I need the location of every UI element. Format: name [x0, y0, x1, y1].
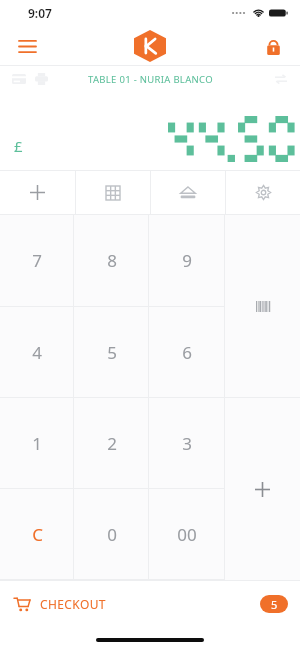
button[interactable]: Transfer	[270, 69, 292, 89]
button[interactable]: Scan barcode	[225, 215, 300, 397]
button[interactable]: Menu	[10, 29, 44, 63]
button[interactable]: 7	[0, 215, 74, 306]
staticText: 9:07	[28, 5, 52, 21]
button[interactable]: Card payment	[8, 69, 30, 89]
staticText: 4	[32, 341, 42, 364]
button[interactable]: 3	[149, 398, 224, 488]
button[interactable]: Home	[130, 26, 170, 66]
button[interactable]: 9	[149, 215, 224, 306]
staticText: 3	[182, 432, 192, 455]
button[interactable]: Grid view	[76, 170, 150, 215]
staticText: C	[32, 523, 43, 546]
button[interactable]: Add	[225, 398, 300, 580]
staticText: 7	[32, 249, 42, 272]
button[interactable]: Lock	[256, 29, 290, 63]
button[interactable]: CHECKOUT	[0, 580, 300, 627]
staticText: 9	[182, 249, 192, 272]
staticText: 5	[271, 597, 278, 612]
staticText: 6	[182, 341, 192, 364]
staticText: CHECKOUT	[40, 596, 106, 612]
button[interactable]: 2	[74, 398, 149, 488]
staticText: 0	[107, 523, 117, 546]
button[interactable]: 1	[0, 398, 74, 488]
button[interactable]: 4	[0, 307, 74, 397]
button[interactable]: 5	[74, 307, 149, 397]
button[interactable]: Print	[30, 69, 52, 89]
button[interactable]: Open drawer	[151, 170, 225, 215]
button[interactable]: 8	[74, 215, 149, 306]
button[interactable]: 00	[149, 489, 224, 579]
button[interactable]: C	[0, 489, 74, 579]
button[interactable]: Settings	[226, 170, 300, 215]
button[interactable]: 0	[74, 489, 149, 579]
staticText: 00	[177, 523, 197, 546]
staticText: £	[14, 136, 23, 156]
staticText: 5	[107, 341, 117, 364]
button[interactable]: 6	[149, 307, 224, 397]
staticText: 1	[32, 432, 42, 455]
staticText: 8	[107, 249, 117, 272]
button[interactable]: Add item	[0, 170, 75, 215]
staticText: 2	[107, 432, 117, 455]
staticText: TABLE 01 - NURIA BLANCO	[88, 73, 213, 86]
